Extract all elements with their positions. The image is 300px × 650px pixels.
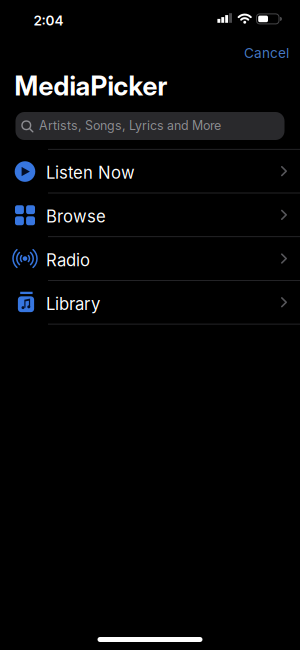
staticText: 2:04 [33, 12, 63, 29]
staticText: Radio [46, 250, 90, 270]
button[interactable]: Browse [0, 193, 300, 236]
button[interactable]: Artists, Songs, Lyrics and More [15, 112, 284, 140]
button[interactable]: Library [0, 281, 300, 324]
staticText: MediaPicker [14, 70, 167, 102]
staticText: Artists, Songs, Lyrics and More [39, 118, 221, 133]
staticText: Browse [46, 206, 106, 227]
button[interactable]: Listen Now [0, 150, 300, 193]
staticText: Library [46, 294, 100, 314]
button[interactable]: Radio [0, 237, 300, 280]
button[interactable]: Cancel [244, 45, 289, 61]
staticText: Listen Now [46, 163, 135, 183]
staticText: Cancel [244, 45, 289, 61]
